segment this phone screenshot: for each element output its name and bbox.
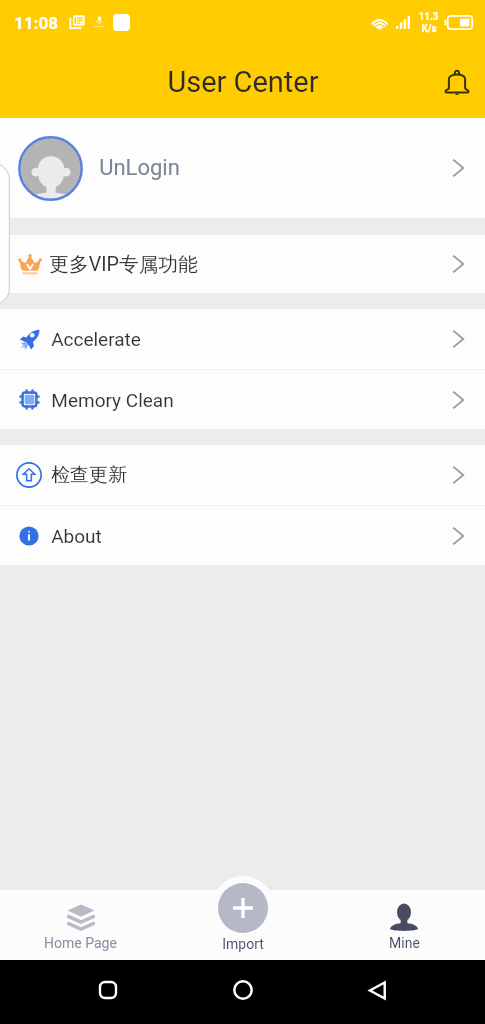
staticText: K/s xyxy=(421,23,437,35)
staticText: Memory Clean xyxy=(51,389,174,411)
staticText: User Center xyxy=(167,65,319,99)
button[interactable]: Memory Clean xyxy=(0,370,485,429)
button[interactable]: 检查更新 xyxy=(0,445,485,505)
staticText: 检查更新 xyxy=(51,463,127,487)
staticText: Import xyxy=(222,936,264,952)
staticText: Mine xyxy=(389,935,420,951)
button[interactable]: Back xyxy=(347,960,407,1020)
button[interactable]: Home Page xyxy=(0,890,161,960)
button[interactable]: 更多VIP专属功能 xyxy=(0,235,485,293)
button[interactable]: Home xyxy=(213,960,273,1020)
staticText: 11:08 xyxy=(14,13,58,33)
button[interactable]: Accelerate xyxy=(0,309,485,369)
staticText: 11.3 xyxy=(418,11,439,23)
staticText: Home Page xyxy=(44,935,117,951)
button[interactable]: About xyxy=(0,506,485,565)
staticText: 更多VIP专属功能 xyxy=(49,252,198,277)
staticText: UnLogin xyxy=(99,155,180,181)
button[interactable]: Recents xyxy=(78,960,138,1020)
button[interactable]: UnLogin xyxy=(0,118,485,218)
button[interactable]: Notifications xyxy=(433,58,481,106)
staticText: About xyxy=(51,525,102,547)
button[interactable]: Mine xyxy=(323,890,485,960)
button[interactable]: Import xyxy=(218,883,268,933)
staticText: Accelerate xyxy=(51,328,141,350)
